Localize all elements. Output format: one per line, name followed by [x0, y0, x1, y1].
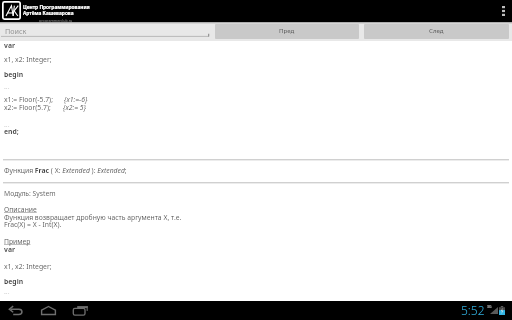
- staticText: Описание: [4, 205, 37, 214]
- staticText: end;: [4, 127, 19, 136]
- staticText: x1, x2: Integer;: [4, 262, 52, 271]
- staticText: След: [429, 26, 444, 34]
- staticText: var: [4, 245, 15, 254]
- staticText: Функция возвращает дробную часть аргумен…: [4, 213, 182, 222]
- button[interactable]: След: [364, 24, 509, 39]
- staticText: begin: [4, 277, 24, 286]
- staticText: x2:= Floor(5.7);: [4, 103, 51, 112]
- button[interactable]: More options: [496, 0, 512, 22]
- staticText: Функция Frac ( X: Extended ): Extended;: [4, 166, 127, 175]
- staticText: x1, x2: Integer;: [4, 55, 52, 64]
- staticText: ...: [4, 287, 10, 296]
- button[interactable]: Recent apps: [69, 301, 91, 320]
- staticText: {x1:=-6}: [64, 95, 88, 104]
- staticText: ...: [4, 82, 10, 91]
- staticText: ...: [4, 120, 10, 129]
- staticText: Пред: [279, 26, 295, 34]
- staticText: Пример: [4, 237, 31, 246]
- button[interactable]: Home: [37, 301, 59, 320]
- staticText: Артёма Кашеварова: [23, 10, 74, 17]
- staticText: programmerclub.ru: [39, 18, 73, 23]
- staticText: Центр Программирования: [23, 4, 90, 11]
- button[interactable]: Поиск: [0, 22, 212, 41]
- staticText: Модуль: System: [4, 189, 56, 198]
- staticText: Frac(X) = X - Int(X).: [4, 220, 62, 229]
- button[interactable]: Пред: [215, 24, 359, 39]
- staticText: 3G: [487, 304, 492, 309]
- staticText: Поиск: [5, 26, 27, 36]
- staticText: x1:= Floor(-5.7);: [4, 95, 53, 104]
- staticText: 5:52: [461, 302, 485, 318]
- staticText: var: [4, 41, 15, 50]
- staticText: begin: [4, 70, 24, 79]
- button[interactable]: Back: [5, 301, 27, 320]
- staticText: {x2:= 5}: [63, 103, 86, 112]
